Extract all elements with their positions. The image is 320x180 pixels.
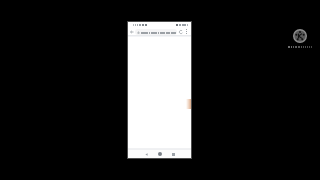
- button[interactable]: Recents: [170, 150, 176, 158]
- button[interactable]: More options: [184, 29, 189, 34]
- button[interactable]: Back: [143, 150, 149, 158]
- button[interactable]: Reload: [178, 29, 184, 35]
- button[interactable]: Back: [129, 29, 135, 35]
- button[interactable]: [135, 29, 177, 35]
- button[interactable]: Home: [157, 150, 163, 158]
